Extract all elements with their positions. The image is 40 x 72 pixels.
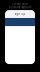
staticText: personal account (8, 5, 31, 9)
staticText: Sign up (14, 12, 25, 16)
staticText: Create your (12, 2, 28, 5)
